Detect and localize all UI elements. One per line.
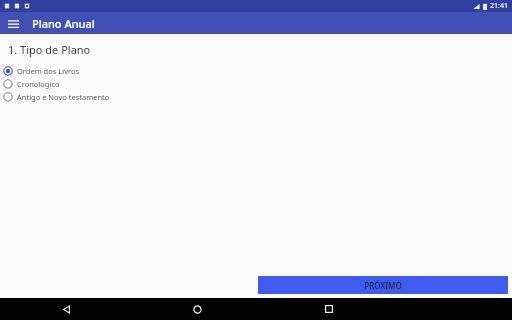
button[interactable]: Cronologico [0, 77, 512, 90]
button[interactable]: Back [0, 298, 132, 320]
staticText: PRÓXIMO [364, 280, 402, 291]
button[interactable]: Antigo e Novo testamento [0, 90, 512, 103]
button[interactable]: PRÓXIMO [258, 276, 508, 294]
staticText: 1. Tipo de Plano [8, 42, 91, 57]
staticText: Cronologico [17, 79, 60, 89]
staticText: Plano Anual [32, 16, 95, 31]
button[interactable]: Recent apps [263, 298, 394, 320]
button[interactable]: Ordem dos Livros [0, 64, 512, 77]
button[interactable]: Home [132, 298, 263, 320]
staticText: Ordem dos Livros [17, 66, 80, 76]
button[interactable]: Open navigation menu [4, 14, 22, 32]
staticText: 21:41 [490, 1, 508, 11]
staticText: Antigo e Novo testamento [17, 92, 110, 102]
